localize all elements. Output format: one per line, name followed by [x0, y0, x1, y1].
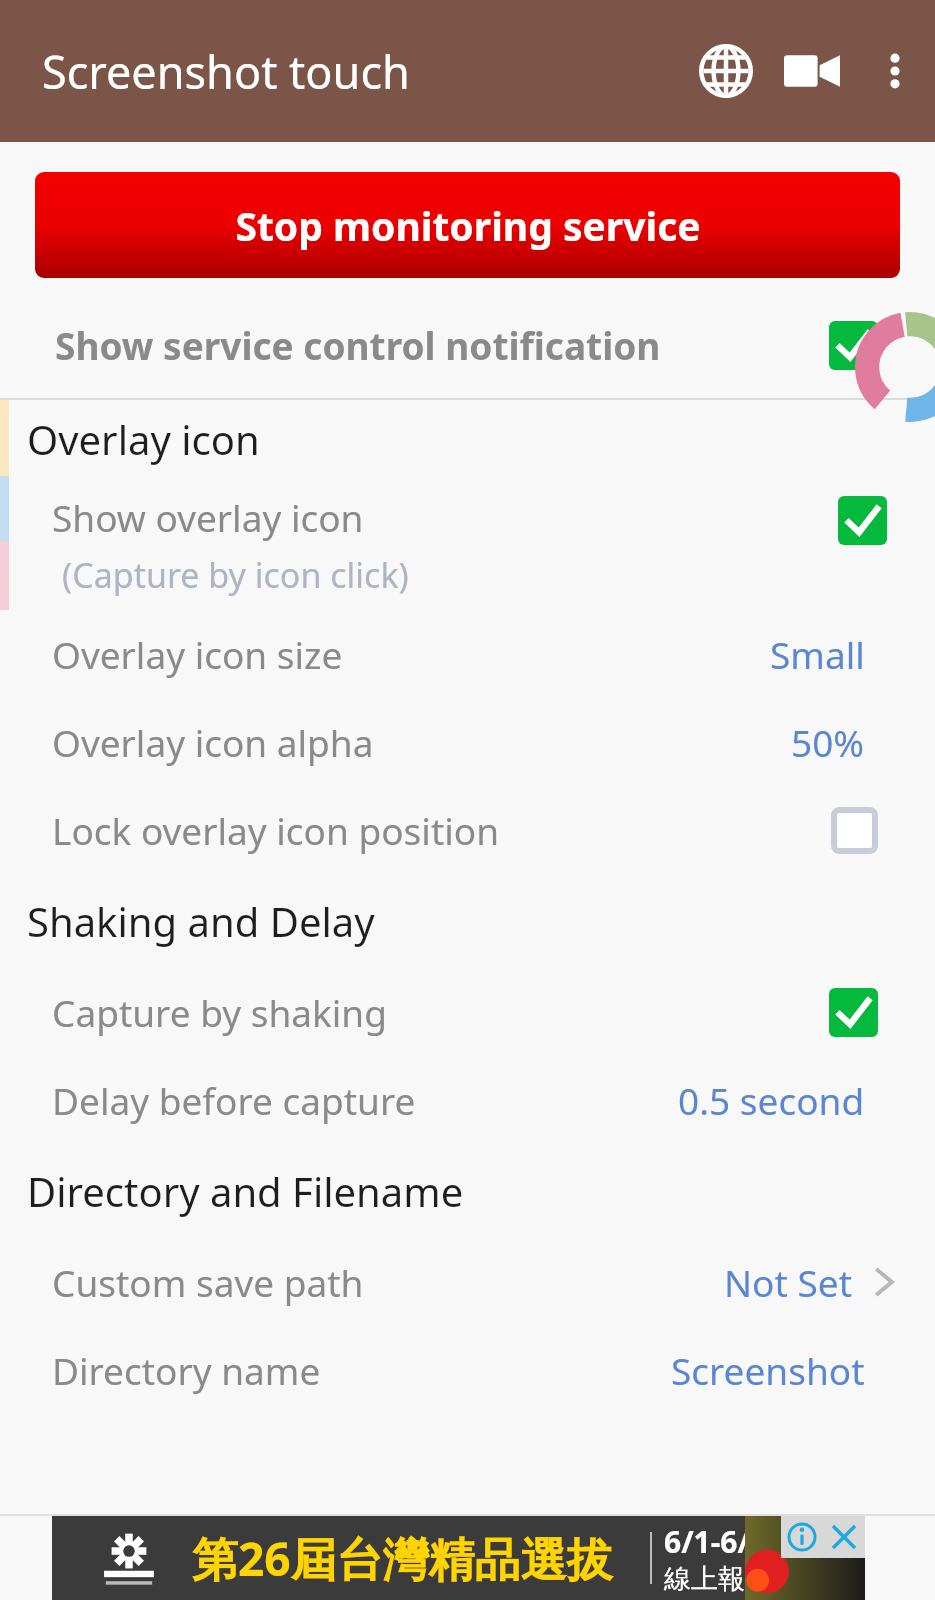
- staticText: Show overlay icon: [52, 492, 364, 542]
- staticText: Directory and Filename: [27, 1164, 464, 1218]
- staticText: 第26屆台灣精品選拔: [192, 1527, 613, 1590]
- button[interactable]: Delay before capture: [0, 1056, 935, 1144]
- button[interactable]: Record video: [769, 28, 855, 114]
- button[interactable]: Overlay icon: [9, 400, 935, 478]
- staticText: 50%: [791, 717, 865, 767]
- staticText: Capture by shaking: [52, 987, 829, 1037]
- button[interactable]: More options: [855, 31, 935, 111]
- button[interactable]: 第26屆台灣精品選拔: [52, 1516, 865, 1600]
- staticText: Show service control notification: [55, 320, 829, 370]
- staticText: Stop monitoring service: [235, 199, 701, 252]
- button[interactable]: Show overlay icon: [9, 478, 935, 610]
- button[interactable]: Directory name: [0, 1326, 935, 1414]
- staticText: (Capture by icon click): [62, 552, 409, 598]
- button[interactable]: Overlay icon alpha: [0, 698, 935, 786]
- staticText: Delay before capture: [52, 1075, 678, 1125]
- button[interactable]: Custom save path: [0, 1238, 935, 1326]
- staticText: Overlay icon size: [52, 629, 770, 679]
- button[interactable]: Directory and Filename: [0, 1144, 935, 1238]
- staticText: Directory name: [52, 1345, 671, 1395]
- staticText: Screenshot touch: [42, 41, 410, 102]
- staticText: Small: [770, 629, 865, 679]
- staticText: Overlay icon: [27, 412, 260, 466]
- button[interactable]: Shaking and Delay: [0, 874, 935, 968]
- button[interactable]: Ad information: [781, 1516, 823, 1558]
- staticText: Lock overlay icon position: [52, 805, 831, 855]
- staticText: Custom save path: [52, 1257, 724, 1307]
- button[interactable]: Lock overlay icon position: [0, 786, 935, 874]
- staticText: Shaking and Delay: [27, 894, 375, 948]
- staticText: Screenshot: [671, 1345, 865, 1395]
- staticText: 線上報名: [664, 1562, 772, 1596]
- button[interactable]: Stop monitoring service: [35, 172, 900, 278]
- staticText: Not Set: [724, 1257, 853, 1307]
- button[interactable]: Close ad: [823, 1516, 865, 1558]
- staticText: Overlay icon alpha: [52, 717, 791, 767]
- button[interactable]: Capture by shaking: [0, 968, 935, 1056]
- button[interactable]: Overlay icon size: [0, 610, 935, 698]
- staticText: 6/1-6/30: [664, 1521, 785, 1562]
- button[interactable]: Show service control notification: [0, 300, 935, 390]
- staticText: 0.5 second: [678, 1075, 865, 1125]
- button[interactable]: Language: [683, 28, 769, 114]
